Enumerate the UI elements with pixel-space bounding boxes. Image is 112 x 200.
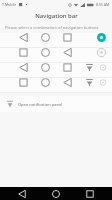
- staticText: 8:55 AM: [96, 2, 110, 7]
- button[interactable]: Back: [10, 187, 34, 200]
- staticText: Please select a combination of navigatio…: [5, 25, 99, 30]
- button[interactable]: Open notification panel: [0, 96, 112, 112]
- button[interactable]: [0, 33, 112, 48]
- staticText: T-Mobile: [2, 2, 17, 7]
- button[interactable]: [0, 78, 112, 93]
- button[interactable]: Recents: [78, 187, 102, 200]
- button[interactable]: [0, 63, 112, 78]
- button[interactable]: [0, 48, 112, 63]
- staticText: Navigation bar: [35, 12, 78, 20]
- button[interactable]: Home: [44, 187, 68, 200]
- staticText: Open notification panel: [18, 102, 63, 107]
